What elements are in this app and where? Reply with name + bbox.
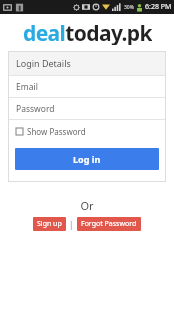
- button[interactable]: Email: [8, 76, 166, 97]
- button[interactable]: Sign up: [33, 217, 66, 231]
- staticText: Forgot Password: [81, 219, 137, 229]
- staticText: Password: [16, 103, 55, 115]
- staticText: Or: [0, 198, 174, 213]
- staticText: dealtoday.pk: [23, 19, 152, 45]
- staticText: 30%: [124, 4, 134, 11]
- button[interactable]: Show Password: [8, 120, 166, 143]
- button[interactable]: Password: [8, 98, 166, 119]
- staticText: Log in: [73, 153, 101, 165]
- staticText: Sign up: [37, 219, 62, 229]
- staticText: 6:28 PM: [145, 2, 172, 12]
- button[interactable]: Forgot Password: [77, 217, 141, 231]
- staticText: Login Details: [16, 57, 71, 69]
- staticText: Email: [16, 81, 38, 93]
- button[interactable]: Log in: [15, 148, 159, 170]
- staticText: |: [69, 219, 74, 230]
- staticText: Show Password: [27, 126, 86, 137]
